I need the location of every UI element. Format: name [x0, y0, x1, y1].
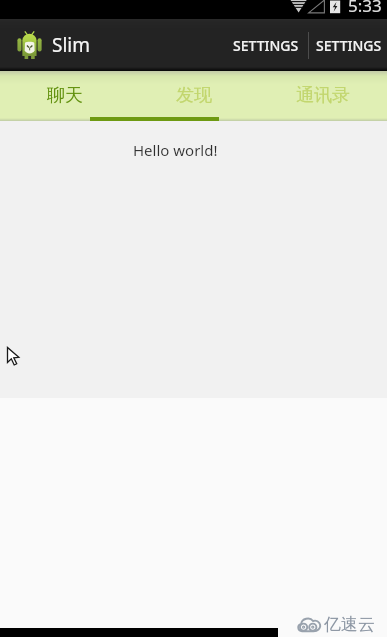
staticText: 发现	[176, 84, 212, 107]
staticText: SETTINGS	[233, 36, 299, 55]
button[interactable]: SETTINGS	[309, 27, 387, 64]
staticText: 聊天	[47, 84, 83, 107]
button[interactable]: 通讯录	[258, 71, 387, 121]
staticText: 通讯录	[296, 84, 350, 107]
staticText: 亿速云	[324, 614, 375, 635]
staticText: Slim	[52, 32, 91, 58]
staticText: 5:33	[348, 0, 382, 13]
staticText: SETTINGS	[316, 36, 382, 55]
button[interactable]: 发现	[129, 71, 258, 121]
button[interactable]: 聊天	[0, 71, 129, 121]
button[interactable]: SETTINGS	[225, 27, 308, 64]
staticText: Hello world!	[133, 140, 218, 160]
